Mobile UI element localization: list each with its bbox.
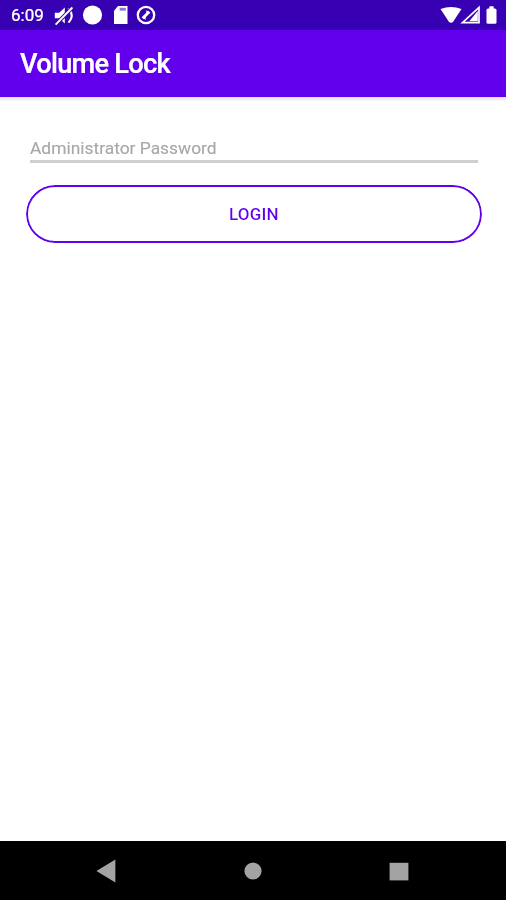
staticText: 6:09 — [11, 5, 44, 25]
button[interactable]: LOGIN — [26, 185, 482, 243]
staticText: Volume Lock — [20, 48, 170, 80]
staticText: Administrator Password — [30, 138, 217, 158]
staticText: LOGIN — [229, 204, 279, 224]
button[interactable]: Back — [77, 841, 137, 900]
button[interactable]: Home — [223, 841, 283, 900]
button[interactable]: Recent apps — [369, 841, 429, 900]
